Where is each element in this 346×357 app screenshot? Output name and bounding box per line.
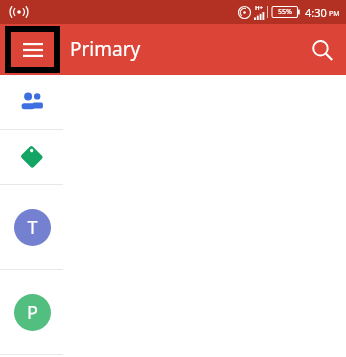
- button[interactable]: Promotions: [0, 130, 346, 184]
- other: Promotions: [20, 145, 44, 169]
- staticText: T: [27, 215, 38, 240]
- staticText: H+: [255, 4, 264, 12]
- button[interactable]: Search: [298, 26, 346, 74]
- button[interactable]: P: [0, 270, 346, 354]
- button[interactable]: Social: [0, 75, 346, 129]
- other: Social: [19, 92, 45, 112]
- staticText: 4:30: [305, 5, 327, 20]
- staticText: Primary: [70, 36, 141, 62]
- button[interactable]: T: [0, 185, 346, 269]
- staticText: PM: [329, 9, 340, 19]
- staticText: 55%: [278, 7, 292, 17]
- button[interactable]: Open navigation menu: [5, 26, 60, 73]
- staticText: P: [27, 300, 38, 325]
